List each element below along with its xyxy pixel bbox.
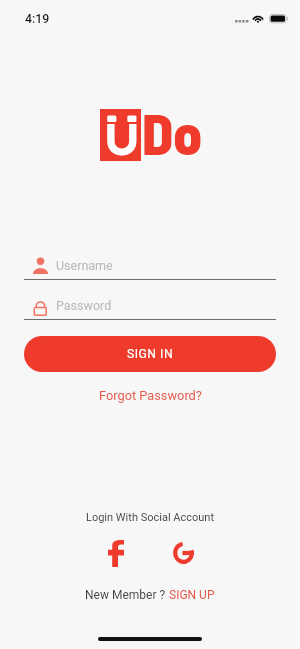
staticText: SIGN IN: [127, 347, 174, 361]
button[interactable]: Username: [24, 252, 276, 279]
staticText: 4:19: [25, 11, 50, 26]
staticText: Do: [142, 98, 203, 166]
staticText: Password: [56, 298, 112, 313]
button[interactable]: Sign in with Facebook: [99, 536, 133, 570]
button[interactable]: Sign in with Google: [166, 536, 200, 570]
button[interactable]: SIGN IN: [24, 336, 276, 372]
staticText: Username: [56, 258, 113, 273]
button[interactable]: SIGN UP: [169, 588, 215, 602]
staticText: Forgot Password?: [99, 388, 202, 403]
staticText: Login With Social Account: [86, 511, 214, 524]
staticText: SIGN UP: [169, 588, 215, 602]
staticText: New Member ?: [85, 588, 169, 602]
button[interactable]: Password: [24, 292, 276, 319]
button[interactable]: Forgot Password?: [91, 384, 210, 407]
